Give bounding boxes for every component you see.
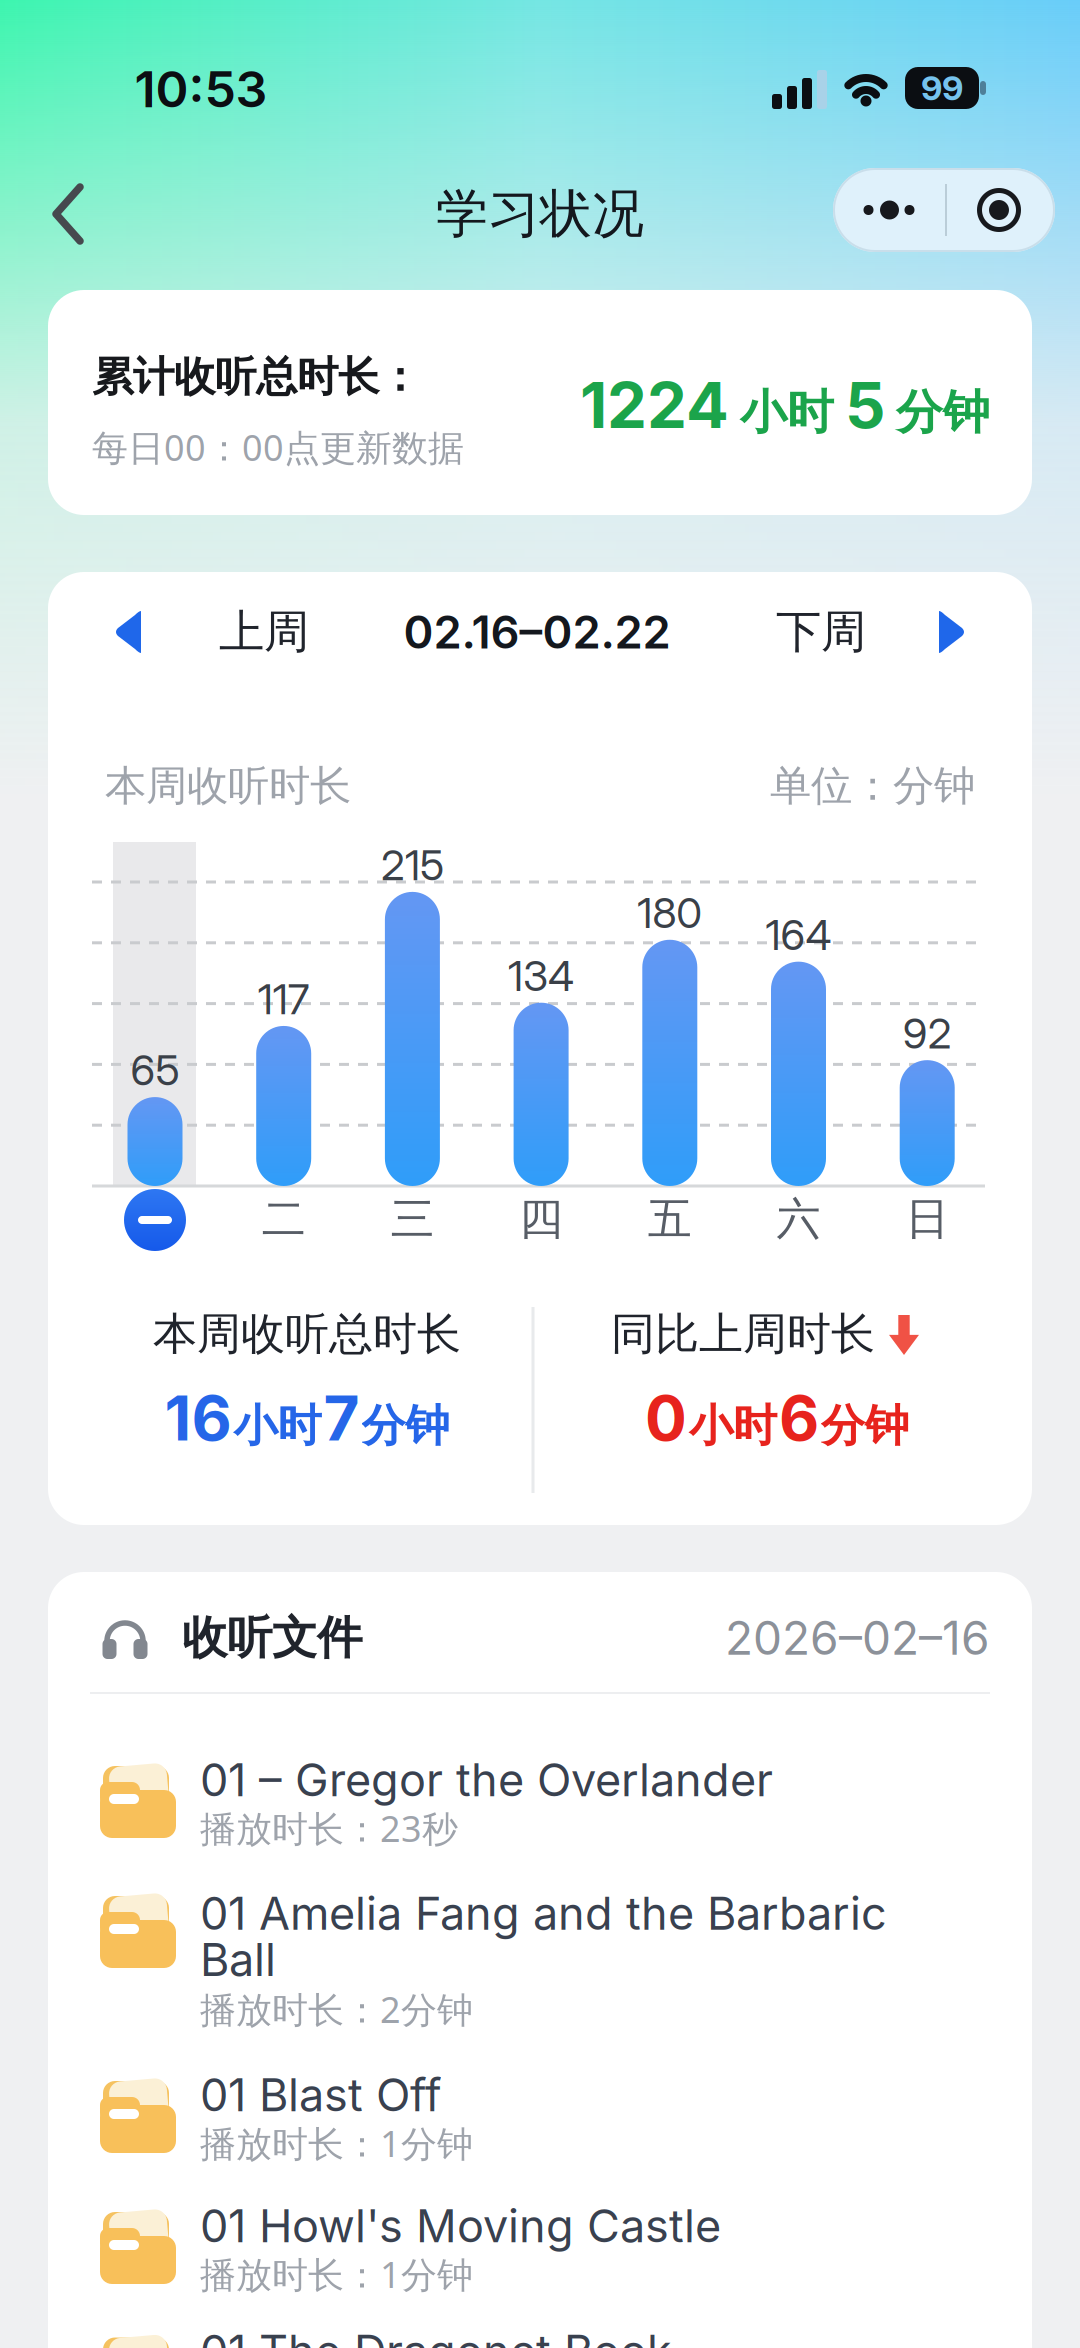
staticText: 2026–02–16 [725, 1610, 990, 1666]
staticText: 单位：分钟 [770, 761, 975, 811]
staticText: 215 [381, 839, 444, 890]
staticText: 上周 [219, 604, 309, 660]
staticText: 每日00：00点更新数据 [92, 423, 464, 471]
button[interactable]: 下周 [776, 597, 966, 667]
staticText: 播放时长：1分钟 [200, 2119, 473, 2167]
staticText: 本周收听时长 [105, 761, 351, 811]
button[interactable]: 二 [253, 1188, 315, 1250]
staticText: 同比上周时长 [611, 1307, 875, 1361]
staticText: 180 [637, 887, 702, 938]
staticText: 二 [262, 1192, 306, 1246]
button[interactable]: 六 [767, 1188, 829, 1250]
staticText: 6 [779, 1380, 819, 1455]
staticText: 01 Amelia Fang and the Barbaric Ball [200, 1886, 887, 1987]
staticText: 五 [648, 1192, 692, 1246]
button[interactable]: 01 – Gregor the Overlander [48, 1738, 1032, 1869]
staticText: 99 [921, 67, 963, 108]
staticText: 本周收听总时长 [153, 1307, 461, 1361]
button[interactable]: 上周 [114, 597, 309, 667]
staticText: 播放时长：1分钟 [200, 2250, 473, 2298]
staticText: 10:53 [134, 59, 267, 119]
staticText: 小时 [233, 1399, 321, 1453]
staticText: 收听文件 [182, 1610, 362, 1666]
staticText: 134 [508, 950, 574, 1001]
staticText: 下周 [776, 604, 866, 660]
staticText: 0 [645, 1380, 687, 1455]
staticText: 1224 [580, 367, 729, 443]
staticText: 累计收听总时长： [92, 352, 420, 402]
staticText: 小时 [740, 384, 834, 441]
button[interactable]: 01 Howl's Moving Castle [48, 2184, 1032, 2315]
button[interactable]: Close [944, 168, 1053, 252]
button[interactable]: 日 [896, 1188, 958, 1250]
staticText: 01 The Dragonet Book [200, 2324, 672, 2348]
staticText: 播放时长：2分钟 [200, 1985, 473, 2033]
button[interactable]: 五 [639, 1188, 701, 1250]
staticText: 92 [903, 1008, 952, 1058]
button[interactable]: More [833, 168, 944, 252]
staticText: 分钟 [821, 1399, 909, 1453]
staticText: 16 [164, 1380, 231, 1455]
staticText: 学习状况 [436, 182, 644, 246]
staticText: 日 [905, 1192, 949, 1246]
staticText: 小时 [689, 1399, 777, 1453]
staticText: 65 [130, 1045, 179, 1095]
staticText: 01 Blast Off [200, 2068, 442, 2122]
button[interactable]: 四 [510, 1188, 572, 1250]
staticText: 164 [765, 909, 831, 960]
button[interactable]: 三 [381, 1188, 443, 1250]
button[interactable]: 01 Amelia Fang and the Barbaric Ball [48, 1856, 1032, 2038]
staticText: 六 [776, 1192, 820, 1246]
staticText: 5 [845, 367, 885, 443]
staticText: 四 [519, 1192, 563, 1246]
staticText: 三 [390, 1192, 434, 1246]
button[interactable]: 周一 [124, 1189, 186, 1251]
staticText: 分钟 [896, 384, 990, 441]
staticText: 117 [258, 973, 310, 1024]
staticText: 播放时长：23秒 [200, 1804, 458, 1852]
staticText: 分钟 [361, 1399, 449, 1453]
staticText: 02.16–02.22 [403, 605, 670, 659]
button[interactable]: Back [0, 0, 1080, 2348]
staticText: 01 Howl's Moving Castle [200, 2199, 721, 2253]
staticText: 01 – Gregor the Overlander [200, 1753, 773, 1807]
button[interactable]: 01 Blast Off [48, 2053, 1032, 2184]
button[interactable]: 01 The Dragonet Book [48, 2309, 1032, 2348]
staticText: 7 [323, 1380, 359, 1455]
